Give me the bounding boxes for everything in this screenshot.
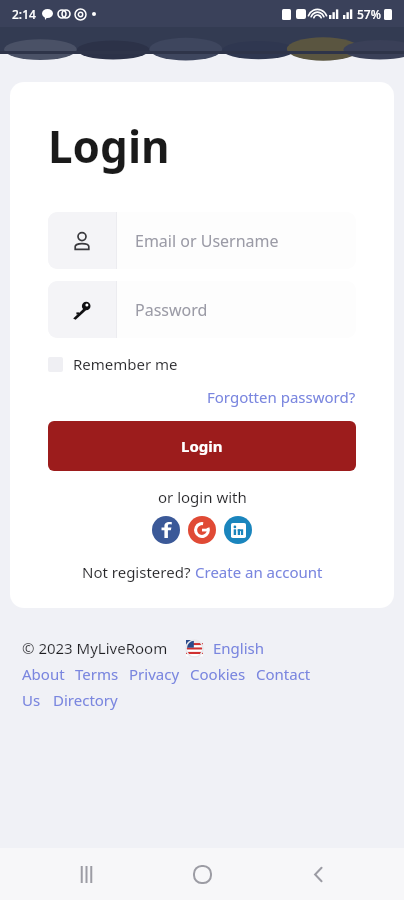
button[interactable]: Contact (256, 664, 311, 684)
button[interactable]: About (22, 664, 65, 684)
button[interactable]: Cookies (190, 664, 246, 684)
button[interactable]: Login with Facebook (152, 516, 180, 544)
button[interactable]: Recent apps (56, 848, 116, 900)
button[interactable]: Us (22, 690, 41, 710)
staticText: © 2023 MyLiveRoom (22, 638, 168, 658)
staticText: Not registered? (82, 562, 195, 582)
staticText: 57% (357, 6, 381, 22)
button[interactable]: Privacy (129, 664, 180, 684)
button[interactable]: Terms (75, 664, 119, 684)
staticText: or login with (158, 487, 247, 507)
button[interactable]: Password (48, 281, 356, 338)
button[interactable]: Directory (53, 690, 118, 710)
staticText: 2:14 (12, 6, 36, 22)
button[interactable]: Email or Username (48, 212, 356, 269)
staticText: Password (135, 299, 208, 321)
button[interactable]: Login (48, 421, 356, 471)
staticText: Remember me (73, 354, 178, 374)
button[interactable]: Login with LinkedIn (224, 516, 252, 544)
staticText: Login (181, 436, 223, 456)
staticText: Login (48, 116, 170, 176)
button[interactable]: Create an account (195, 562, 323, 582)
button[interactable]: Forgotten password? (207, 387, 356, 407)
button[interactable]: Back (288, 848, 348, 900)
staticText: Email or Username (135, 230, 279, 252)
button[interactable]: English (213, 638, 265, 658)
button[interactable]: Login with Google (188, 516, 216, 544)
button[interactable]: Home (172, 848, 232, 900)
button[interactable]: Remember me (48, 352, 178, 376)
